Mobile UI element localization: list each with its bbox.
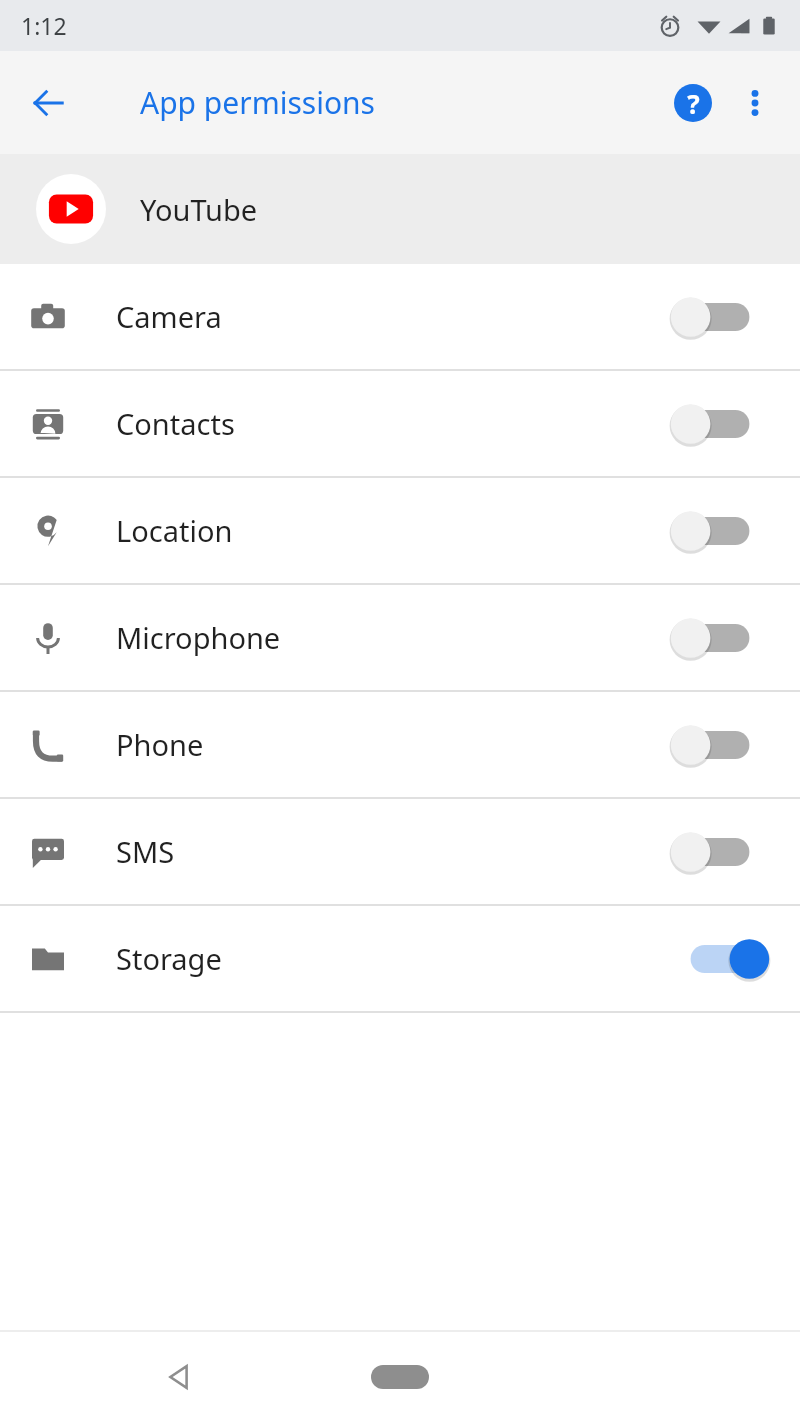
button[interactable]: Home: [360, 1347, 440, 1407]
staticText: ?: [687, 86, 700, 121]
button[interactable]: Help: [662, 72, 724, 134]
button[interactable]: Off: [678, 715, 762, 775]
button[interactable]: Off: [678, 394, 762, 454]
button[interactable]: Location: [0, 478, 800, 583]
staticText: Phone: [116, 725, 204, 764]
button[interactable]: SMS: [0, 799, 800, 904]
staticText: Camera: [116, 297, 222, 336]
staticText: Contacts: [116, 404, 235, 443]
staticText: 1:12: [21, 10, 67, 41]
button[interactable]: Back: [20, 75, 76, 131]
staticText: Location: [116, 511, 233, 550]
button[interactable]: Phone: [0, 692, 800, 797]
staticText: App permissions: [140, 82, 375, 123]
button[interactable]: Camera: [0, 264, 800, 369]
button[interactable]: Contacts: [0, 371, 800, 476]
button[interactable]: More options: [724, 72, 786, 134]
button[interactable]: Microphone: [0, 585, 800, 690]
button[interactable]: Back: [150, 1347, 210, 1407]
button[interactable]: YouTube: [0, 154, 800, 264]
staticText: SMS: [116, 832, 175, 871]
staticText: YouTube: [140, 190, 258, 229]
button[interactable]: Off: [678, 608, 762, 668]
staticText: Storage: [116, 939, 222, 978]
button[interactable]: Off: [678, 287, 762, 347]
button[interactable]: Storage: [0, 906, 800, 1011]
button[interactable]: Off: [678, 822, 762, 882]
button[interactable]: Off: [678, 501, 762, 561]
button[interactable]: On: [678, 929, 762, 989]
staticText: Microphone: [116, 618, 281, 657]
